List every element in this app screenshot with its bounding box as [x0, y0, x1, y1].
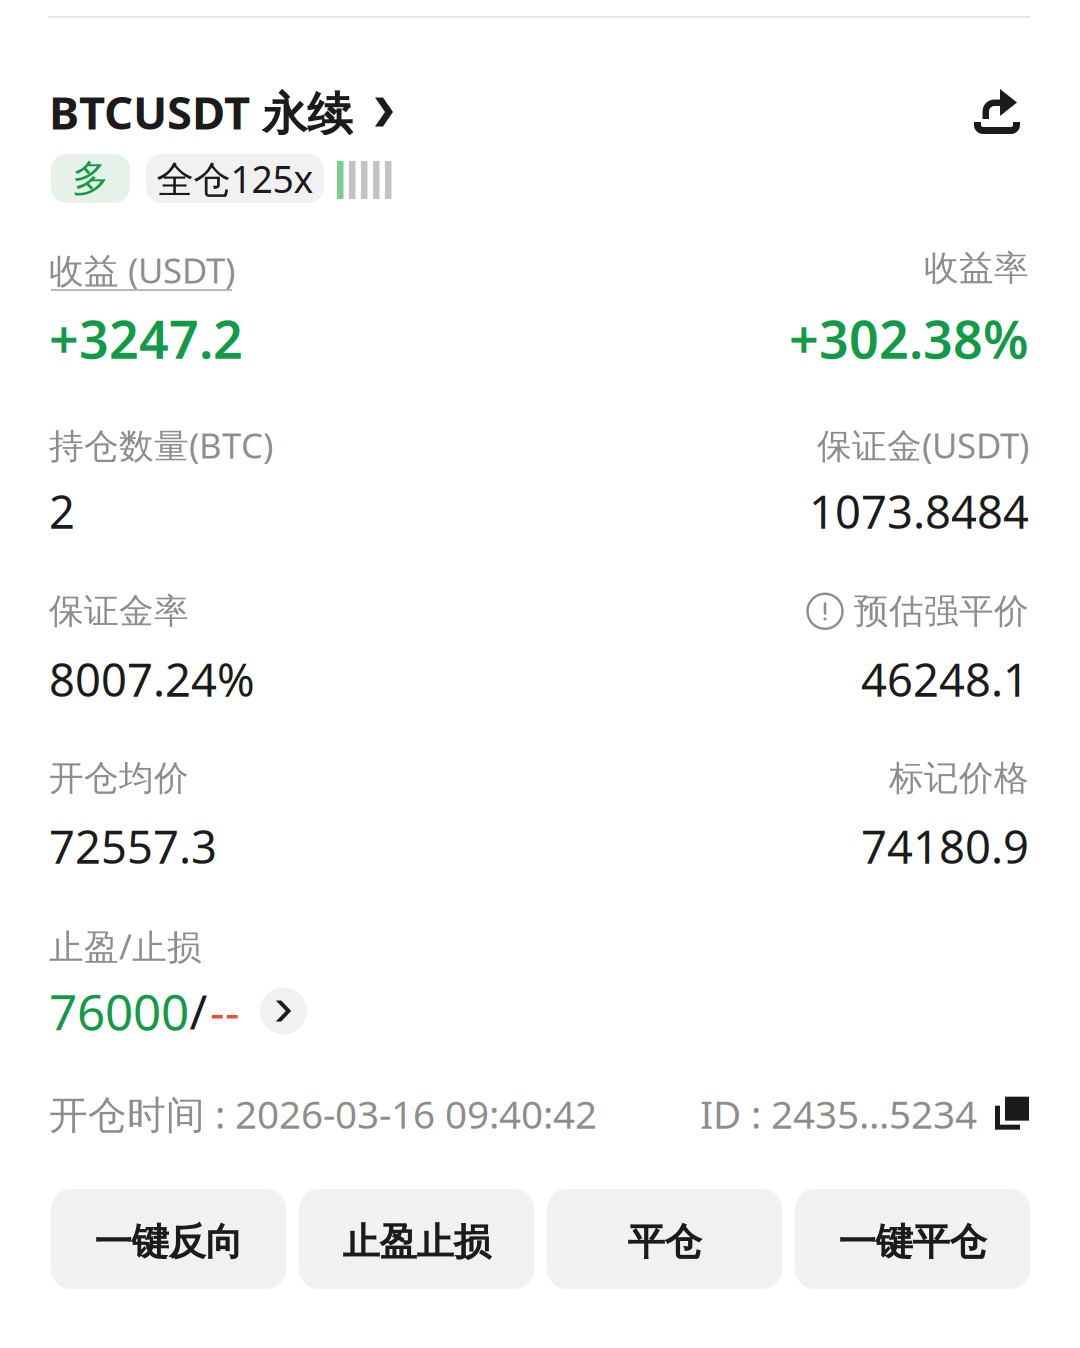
button[interactable]: BTCUSDT 永续 — [49, 84, 393, 140]
button[interactable]: 一键平仓 — [795, 1189, 1030, 1289]
staticText: 开仓时间 : 2026-03-16 09:40:42 — [49, 1088, 597, 1139]
staticText: +3247.2 — [49, 304, 243, 373]
staticText: 平仓 — [627, 1219, 701, 1265]
staticText: 46248.1 — [861, 649, 1029, 709]
staticText: 全仓125x — [156, 154, 313, 203]
staticText: 8007.24% — [49, 649, 255, 709]
staticText: 72557.3 — [49, 816, 217, 876]
staticText: 标记价格 — [889, 757, 1029, 800]
staticText: 1073.8484 — [809, 481, 1029, 541]
staticText: 保证金率 — [49, 590, 189, 633]
button[interactable]: 一键反向 — [51, 1189, 286, 1289]
staticText: 收益 (USDT) — [49, 247, 235, 293]
staticText: 收益率 — [924, 247, 1029, 290]
staticText: ID : 2435...5234 — [700, 1088, 977, 1139]
staticText: 74180.9 — [861, 816, 1029, 876]
staticText: 止盈止损 — [342, 1219, 490, 1265]
staticText: / — [189, 979, 207, 1043]
button[interactable]: 止盈止损 — [299, 1189, 534, 1289]
staticText: -- — [210, 981, 240, 1041]
staticText: 持仓数量(BTC) — [49, 422, 273, 468]
button[interactable]: 平仓 — [547, 1189, 782, 1289]
staticText: 76000 — [49, 978, 189, 1044]
staticText: 2 — [49, 481, 75, 541]
staticText: 一键平仓 — [838, 1219, 986, 1265]
staticText: 预估强平价 — [854, 590, 1029, 633]
button[interactable]: Copy ID — [995, 1097, 1029, 1131]
staticText: 保证金(USDT) — [817, 422, 1029, 468]
button[interactable]: Share — [972, 88, 1020, 134]
staticText: 多 — [72, 156, 109, 201]
staticText: +302.38% — [789, 304, 1029, 373]
staticText: 开仓均价 — [49, 757, 189, 800]
staticText: 一键反向 — [94, 1219, 242, 1265]
button[interactable]: 76000 — [49, 985, 308, 1037]
staticText: 止盈/止损 — [49, 923, 202, 969]
staticText: BTCUSDT 永续 — [49, 82, 352, 142]
